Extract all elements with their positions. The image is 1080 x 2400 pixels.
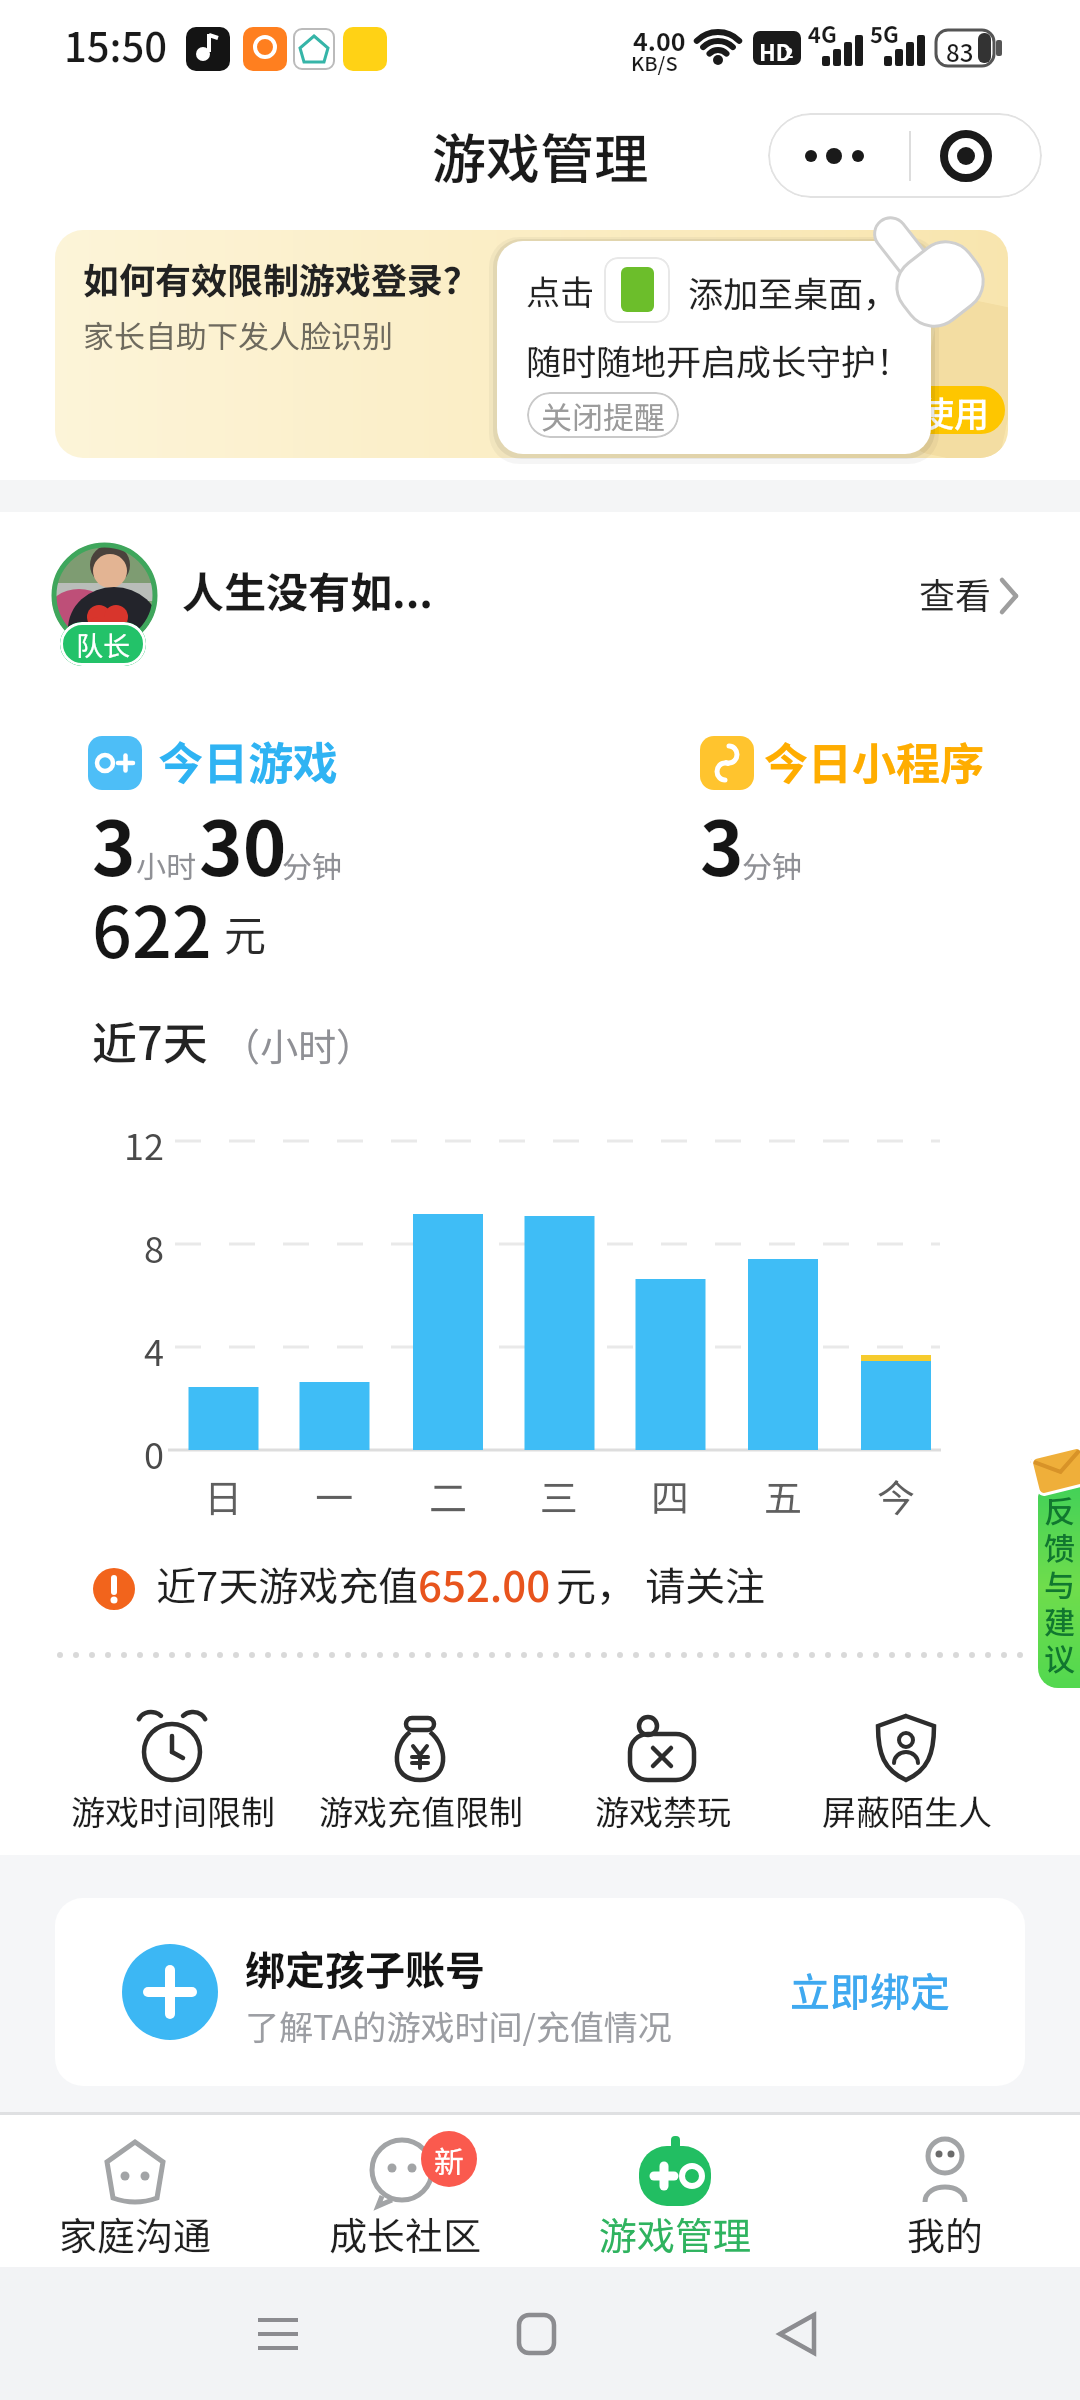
staticText: 30	[199, 790, 287, 897]
staticText: 小时	[136, 843, 196, 886]
staticText: 652.00	[418, 1553, 551, 1614]
staticText: 83	[946, 34, 974, 69]
staticText: 反	[1044, 1487, 1075, 1532]
staticText: 今	[877, 1468, 916, 1516]
staticText: KB/S	[631, 48, 678, 77]
staticText: 四	[651, 1468, 690, 1516]
staticText: 元， 请关注	[556, 1555, 765, 1613]
staticText: 近7天游戏充值	[156, 1555, 419, 1613]
button[interactable]	[900, 560, 1040, 620]
staticText: 今日游戏	[158, 728, 339, 793]
staticText: 三	[540, 1468, 579, 1516]
staticText: 绑定孩子账号	[245, 1939, 485, 1997]
staticText: 添加至桌面，	[688, 266, 899, 317]
button[interactable]	[734, 2290, 858, 2380]
button[interactable]	[35, 2118, 235, 2266]
staticText: 馈	[1044, 1524, 1075, 1569]
staticText: 今日小程序	[764, 729, 984, 793]
staticText: 游戏时间限制	[71, 1786, 275, 1834]
staticText: 立即绑定	[790, 1961, 950, 2019]
staticText: （小时）	[222, 1017, 375, 1072]
staticText: 随时随地开启成长守护！	[526, 334, 912, 385]
button[interactable]	[50, 1700, 295, 1840]
button[interactable]	[540, 1700, 785, 1840]
button[interactable]	[784, 1700, 1029, 1840]
staticText: 使用	[919, 386, 990, 434]
button[interactable]	[478, 2290, 602, 2380]
button[interactable]	[700, 736, 754, 790]
staticText: 与	[1044, 1561, 1075, 1606]
staticText: 游戏管理	[599, 2206, 752, 2258]
staticText: 家庭沟通	[59, 2206, 212, 2258]
button[interactable]	[55, 230, 1008, 458]
button[interactable]: 关闭提醒	[527, 392, 679, 438]
staticText: 查看	[919, 567, 992, 619]
staticText: 3	[700, 790, 744, 897]
staticText: 0	[144, 1427, 164, 1473]
staticText: 5G	[870, 17, 899, 49]
staticText: 4	[144, 1324, 164, 1370]
staticText: 4.00	[633, 22, 686, 58]
button[interactable]	[768, 113, 1042, 198]
staticText: 屏蔽陌生人	[822, 1786, 992, 1834]
staticText: 游戏充值限制	[319, 1786, 523, 1834]
staticText: 3	[92, 790, 136, 897]
staticText: 一	[315, 1468, 354, 1516]
staticText: 二	[429, 1468, 468, 1516]
staticText: 分钟	[742, 843, 802, 886]
button[interactable]	[497, 241, 931, 454]
staticText: 议	[1044, 1635, 1075, 1680]
staticText: 队长	[76, 625, 130, 664]
button[interactable]	[298, 1700, 543, 1840]
staticText: 622	[92, 877, 212, 978]
staticText: 我的	[907, 2206, 984, 2258]
staticText: 15:50	[64, 16, 168, 74]
staticText: 4G	[808, 17, 837, 49]
button[interactable]	[1038, 1486, 1080, 1688]
staticText: HD	[759, 35, 792, 67]
staticText: 人生没有如...	[182, 559, 433, 620]
staticText: 2	[785, 42, 794, 62]
staticText: 近7天	[92, 1008, 208, 1073]
staticText: 五	[764, 1468, 803, 1516]
staticText: 分钟	[282, 843, 342, 886]
staticText: 关闭提醒	[541, 393, 665, 438]
button[interactable]: 使用	[903, 386, 1005, 434]
staticText: 游戏禁玩	[595, 1786, 731, 1834]
staticText: 如何有效限制游戏登录？	[83, 252, 480, 304]
staticText: 家长自助下发人脸识别	[83, 312, 393, 357]
staticText: 8	[144, 1221, 164, 1267]
staticText: 元	[224, 902, 267, 963]
button[interactable]	[216, 2290, 340, 2380]
staticText: 日	[204, 1468, 243, 1516]
button[interactable]	[55, 1898, 1025, 2086]
button[interactable]	[88, 736, 142, 790]
staticText: 成长社区	[329, 2206, 482, 2258]
button[interactable]	[845, 2118, 1045, 2266]
button[interactable]	[575, 2118, 775, 2266]
staticText: 点击	[526, 266, 594, 315]
staticText: 12	[124, 1118, 164, 1164]
staticText: 了解TA的游戏时间/充值情况	[245, 2001, 672, 2050]
staticText: 新	[434, 2138, 464, 2181]
button[interactable]	[305, 2118, 505, 2266]
button[interactable]: 立即绑定	[775, 1950, 965, 2030]
staticText: 建	[1044, 1598, 1075, 1643]
staticText: 游戏管理	[432, 116, 648, 194]
